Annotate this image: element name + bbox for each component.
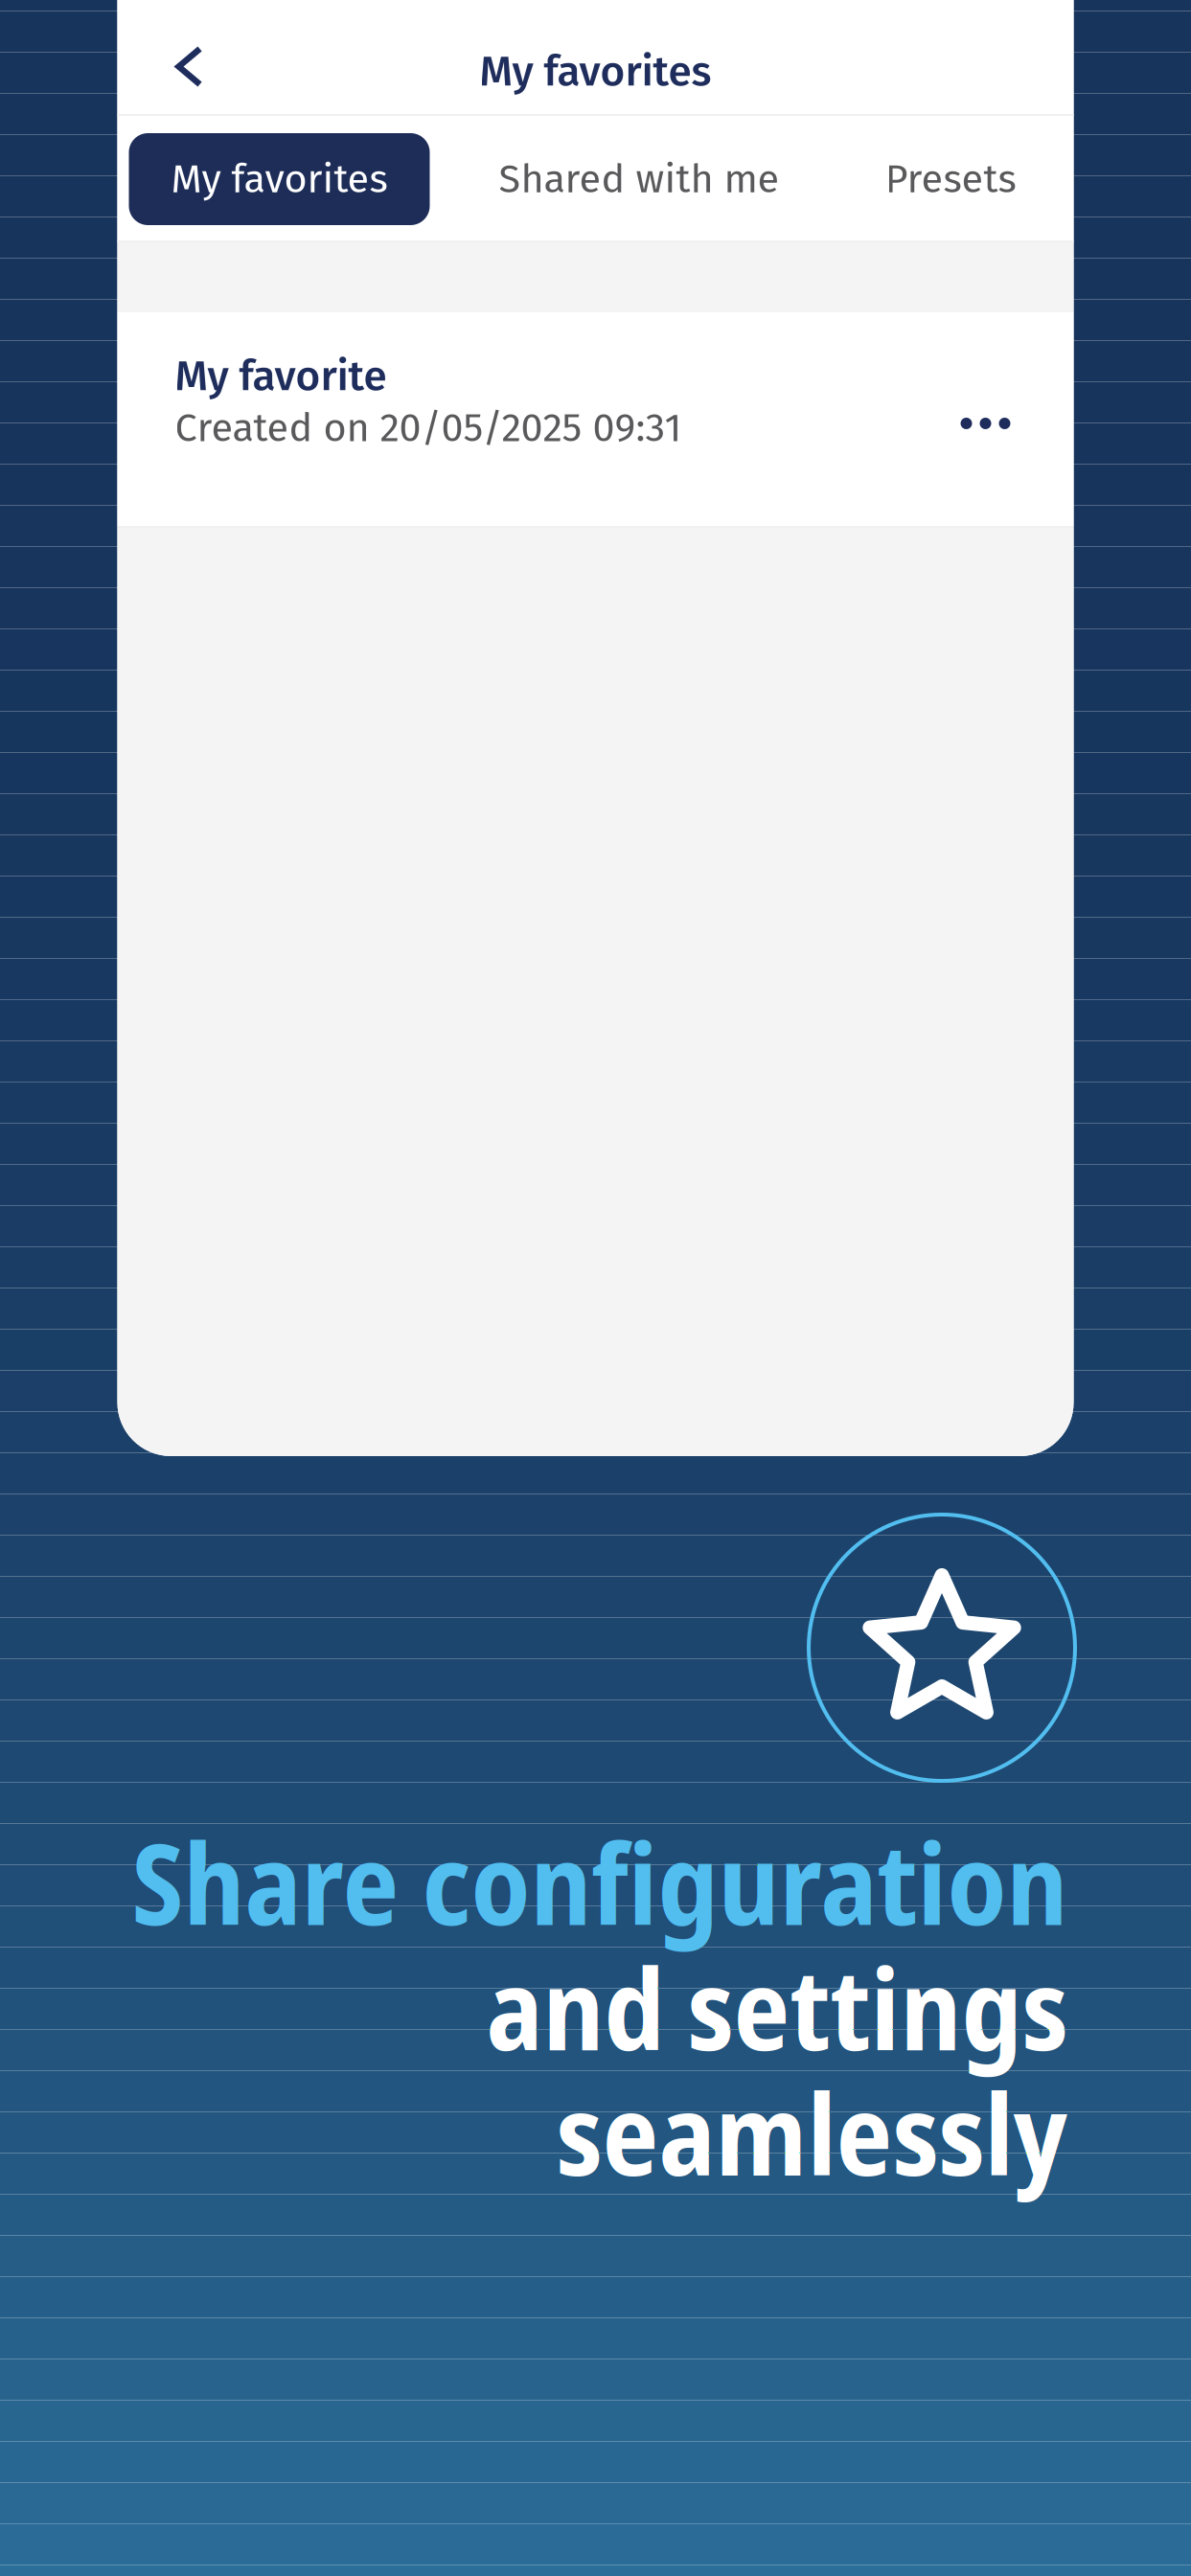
- staticText: Shared with me: [499, 155, 779, 203]
- staticText: Presets: [885, 155, 1016, 203]
- staticText: My favorites: [171, 155, 388, 203]
- button[interactable]: Presets: [885, 155, 1016, 203]
- button[interactable]: Shared with me: [499, 155, 779, 203]
- staticText: Share configuration: [132, 1805, 1068, 1958]
- button[interactable]: Back: [154, 0, 246, 116]
- button[interactable]: My favorites: [129, 133, 430, 225]
- staticText: My favorite: [175, 351, 387, 401]
- button[interactable]: My favorite: [117, 312, 1074, 526]
- staticText: Created on 20/05/2025 09:31: [175, 404, 682, 452]
- staticText: and settings: [486, 1930, 1068, 2083]
- staticText: seamlessly: [556, 2055, 1068, 2209]
- staticText: My favorites: [480, 46, 711, 97]
